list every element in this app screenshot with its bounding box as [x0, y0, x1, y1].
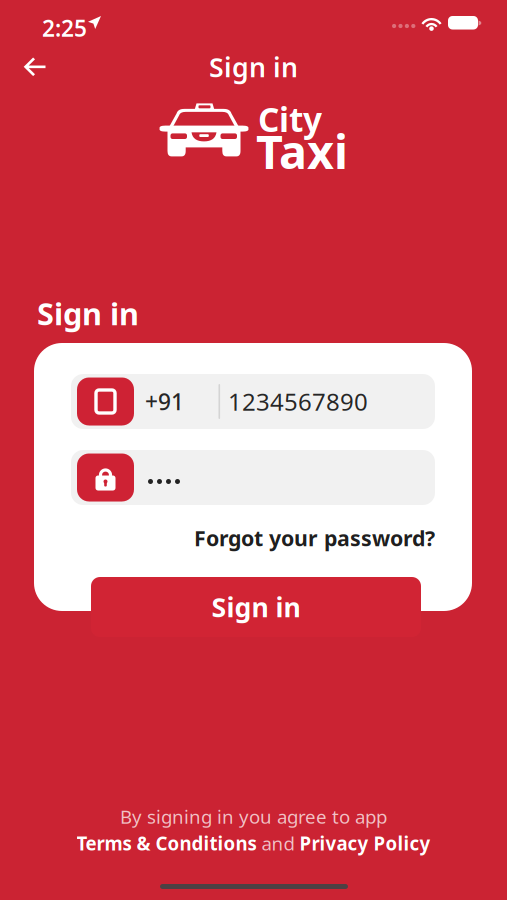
staticText: Sign in	[37, 293, 139, 334]
staticText: Privacy Policy	[299, 831, 430, 856]
staticText: +91	[145, 386, 184, 416]
staticText: Forgot your password?	[194, 524, 435, 552]
button[interactable]: Terms & Conditions	[76, 831, 256, 856]
staticText: Taxi	[256, 120, 348, 182]
staticText: Sign in	[211, 589, 300, 625]
staticText: 1234567890	[228, 386, 368, 417]
button[interactable]: Privacy Policy	[299, 831, 430, 856]
button[interactable]: Back	[13, 45, 57, 89]
button[interactable]: Sign in	[91, 577, 421, 637]
staticText: and	[261, 831, 294, 856]
staticText: By signing in you agree to app	[120, 804, 387, 829]
staticText: City	[258, 97, 322, 141]
staticText: Sign in	[209, 49, 298, 85]
staticText: Terms & Conditions	[76, 831, 256, 856]
staticText: 2:25	[42, 13, 87, 43]
button[interactable]: Forgot your password?	[194, 524, 435, 552]
